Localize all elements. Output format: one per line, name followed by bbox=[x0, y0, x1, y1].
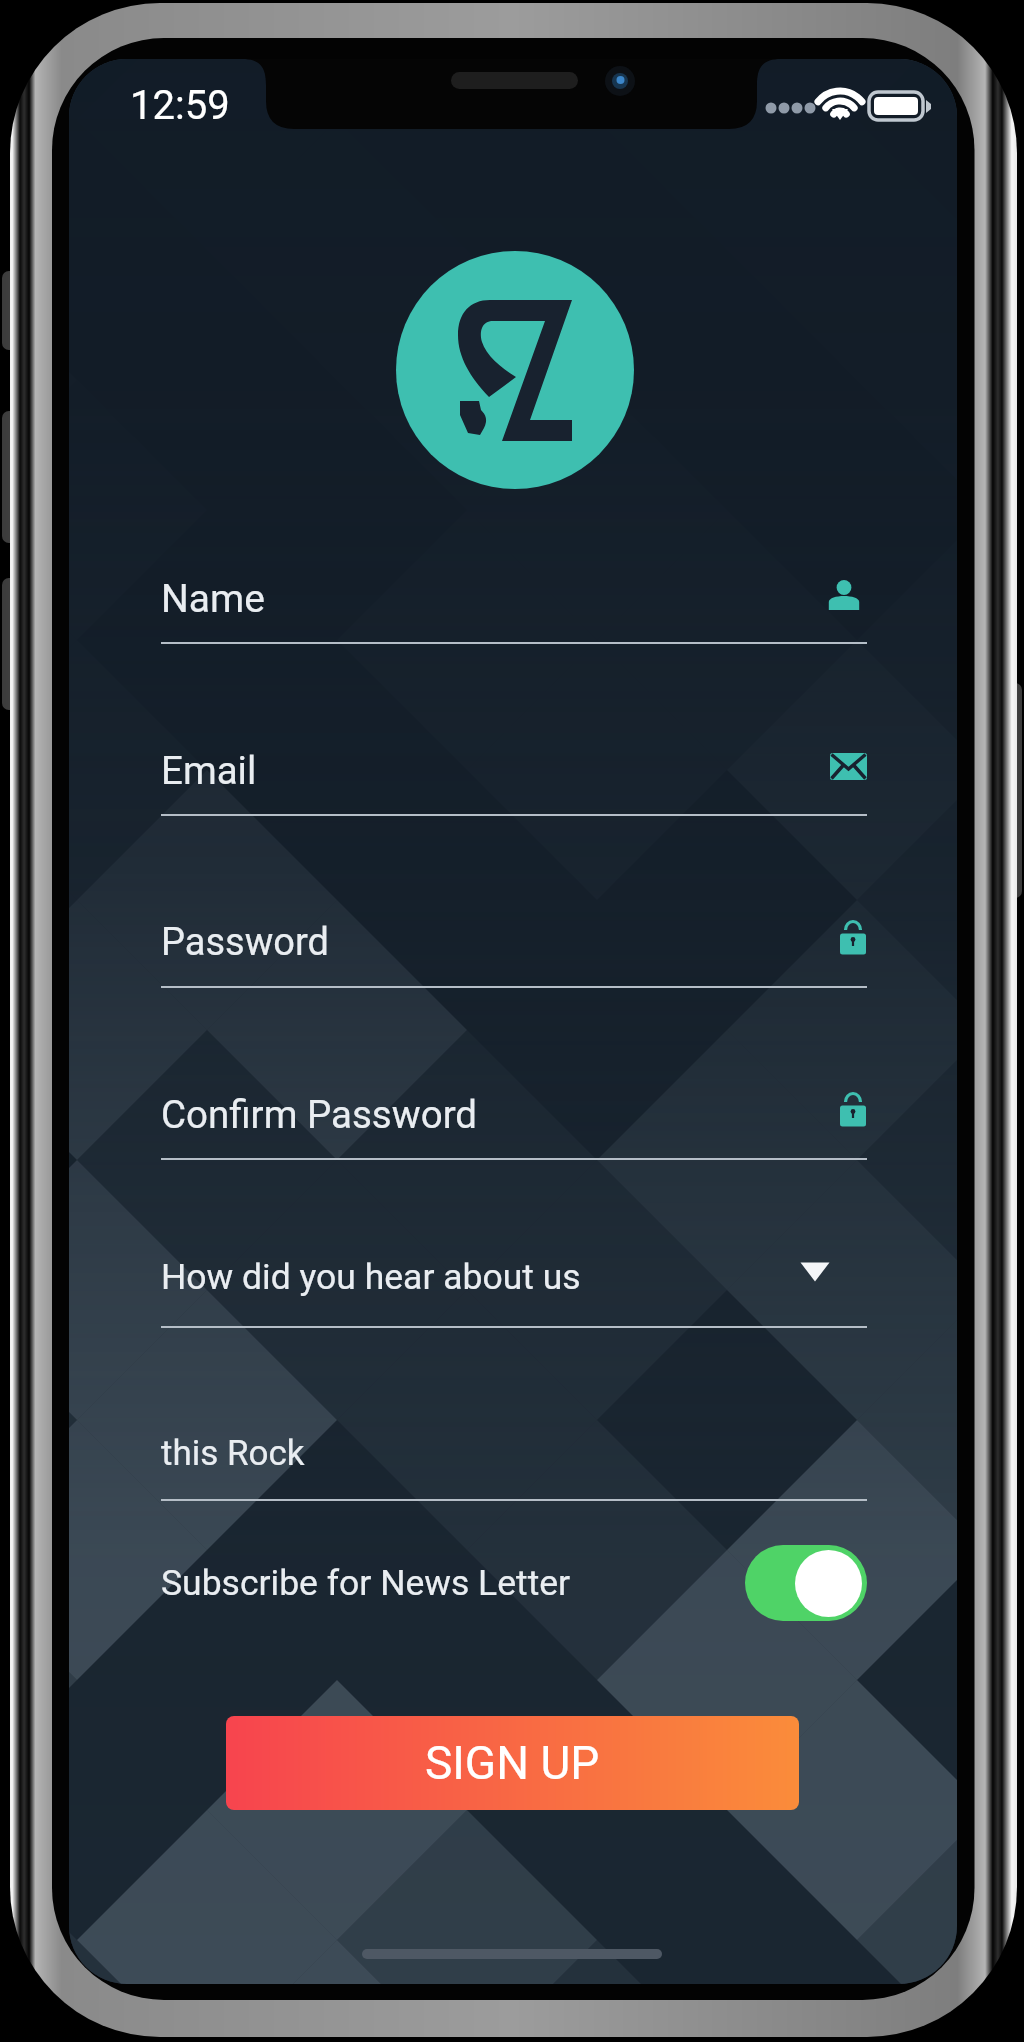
button[interactable]: Name bbox=[161, 555, 867, 645]
staticText: Password bbox=[161, 920, 329, 965]
button[interactable]: Email bbox=[161, 727, 867, 817]
staticText: SIGN UP bbox=[425, 1736, 600, 1790]
staticText: Confirm Password bbox=[161, 1092, 478, 1137]
button[interactable]: How did you hear about us bbox=[161, 1239, 867, 1329]
staticText: 12:59 bbox=[130, 82, 230, 129]
staticText: Email bbox=[161, 748, 257, 793]
staticText: Name bbox=[161, 576, 265, 622]
staticText: this Rock bbox=[161, 1433, 305, 1474]
button[interactable]: Password bbox=[161, 899, 867, 989]
button[interactable]: SIGN UP bbox=[226, 1716, 799, 1810]
button[interactable]: this Rock bbox=[161, 1412, 867, 1502]
button[interactable]: Subscribe for News Letter bbox=[161, 1545, 867, 1621]
staticText: How did you hear about us bbox=[161, 1256, 581, 1298]
button[interactable]: Confirm Password bbox=[161, 1071, 867, 1161]
staticText: Subscribe for News Letter bbox=[161, 1562, 571, 1604]
